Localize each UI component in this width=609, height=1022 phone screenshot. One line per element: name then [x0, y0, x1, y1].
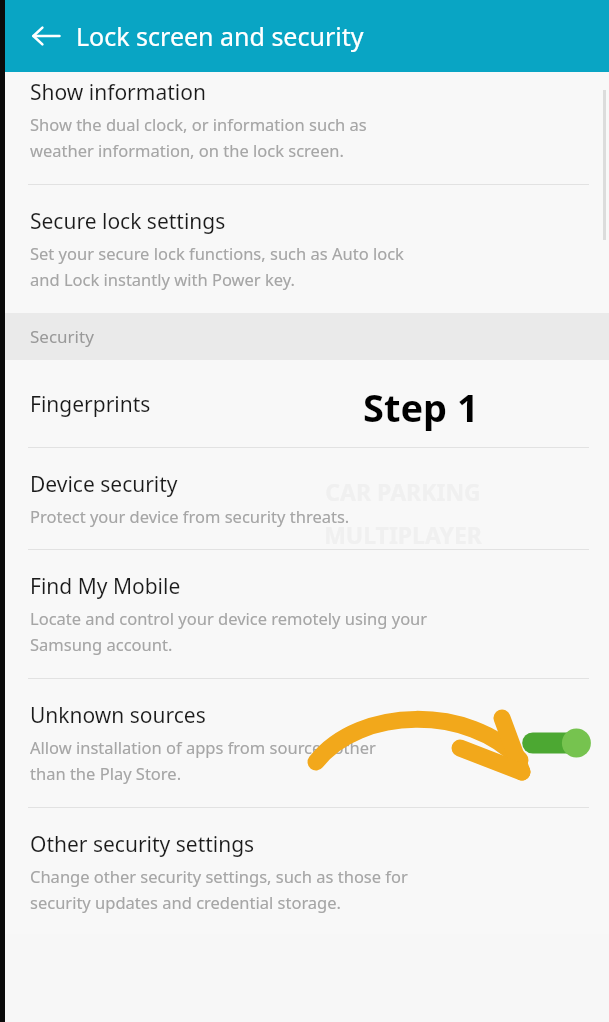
staticText: Other security settings [30, 830, 255, 859]
button[interactable]: Device security [0, 448, 609, 549]
staticText: Security [30, 325, 94, 348]
button[interactable]: Show information [0, 72, 609, 184]
staticText: Find My Mobile [30, 572, 181, 601]
button[interactable]: Fingerprints [0, 360, 609, 447]
staticText: Fingerprints [30, 390, 151, 419]
staticText: Secure lock settings [30, 207, 226, 236]
staticText: MULTIPLAYER [288, 519, 518, 550]
staticText: Protect your device from security threat… [30, 505, 350, 527]
button[interactable]: Other security settings [0, 808, 609, 934]
staticText: Allow installation of apps from sources … [30, 736, 376, 785]
button[interactable]: Find My Mobile [0, 550, 609, 678]
staticText: Step 1 [363, 381, 479, 433]
button[interactable]: Secure lock settings [0, 185, 609, 313]
staticText: Locate and control your device remotely … [30, 607, 428, 656]
staticText: Device security [30, 470, 178, 499]
button[interactable]: Back [22, 12, 70, 60]
staticText: Show information [30, 78, 206, 107]
staticText: CAR PARKING [288, 476, 518, 507]
button[interactable]: Unknown sources [0, 679, 609, 807]
staticText: Unknown sources [30, 701, 206, 730]
button[interactable]: Unknown sources toggle, on [505, 718, 591, 768]
staticText: Lock screen and security [76, 19, 364, 53]
staticText: Set your secure lock functions, such as … [30, 242, 404, 291]
staticText: Change other security settings, such as … [30, 865, 408, 914]
staticText: Show the dual clock, or information such… [30, 113, 367, 162]
